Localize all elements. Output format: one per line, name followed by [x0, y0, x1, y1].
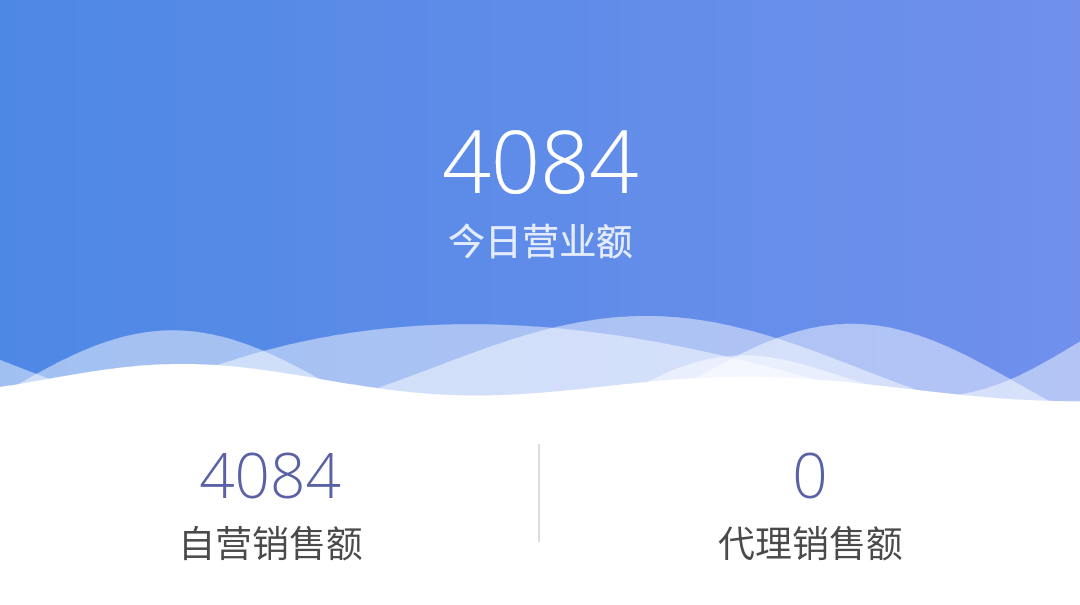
staticText: 4084 [199, 432, 341, 516]
staticText: 自营销售额 [178, 514, 363, 568]
staticText: 代理销售额 [718, 514, 903, 568]
staticText: 4084 [442, 101, 639, 218]
button[interactable]: 4084 [0, 0, 540, 605]
staticText: 今日营业额 [448, 212, 633, 266]
button[interactable]: 0 [540, 0, 1080, 605]
staticText: 0 [792, 432, 828, 516]
